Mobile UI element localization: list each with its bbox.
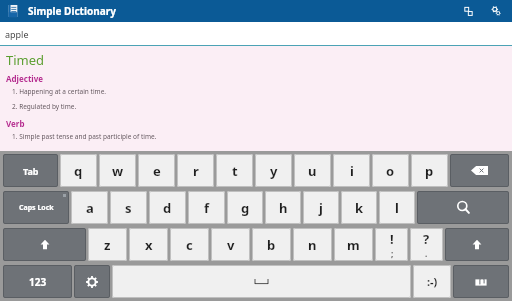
button[interactable]: r bbox=[177, 154, 214, 187]
button[interactable]: p bbox=[411, 154, 448, 187]
button[interactable]: k bbox=[341, 191, 377, 224]
button[interactable]: Space bbox=[112, 265, 411, 298]
button[interactable]: Hide keyboard bbox=[453, 265, 509, 298]
staticText: . bbox=[425, 248, 428, 259]
staticText: 123 bbox=[29, 275, 47, 289]
staticText: r bbox=[193, 162, 199, 180]
staticText: p bbox=[425, 162, 434, 180]
staticText: x bbox=[145, 236, 153, 254]
staticText: h bbox=[279, 199, 288, 217]
button[interactable]: :-) bbox=[413, 265, 451, 298]
staticText: q bbox=[74, 162, 83, 180]
button[interactable]: Simple Dictionary bbox=[4, 2, 22, 20]
staticText: j bbox=[319, 199, 323, 217]
button[interactable]: y bbox=[255, 154, 292, 187]
staticText: Caps Lock bbox=[19, 203, 54, 213]
button[interactable]: e bbox=[138, 154, 175, 187]
button[interactable]: f bbox=[188, 191, 225, 224]
staticText: b bbox=[267, 236, 276, 254]
staticText: v bbox=[227, 236, 235, 254]
staticText: Timed bbox=[6, 51, 45, 69]
staticText: 2. Regulated by time. bbox=[12, 102, 77, 111]
button[interactable]: Input settings bbox=[74, 265, 110, 298]
staticText: ? bbox=[423, 230, 430, 248]
button[interactable]: d bbox=[149, 191, 186, 224]
button[interactable]: Caps Lock bbox=[3, 191, 69, 224]
staticText: Adjective bbox=[6, 73, 44, 84]
button[interactable]: v bbox=[211, 228, 250, 261]
button[interactable]: Settings bbox=[486, 1, 506, 21]
staticText: ! bbox=[390, 230, 394, 248]
button[interactable]: o bbox=[372, 154, 409, 187]
staticText: u bbox=[308, 162, 317, 180]
staticText: :-) bbox=[427, 274, 438, 289]
staticText: g bbox=[241, 199, 250, 217]
staticText: w bbox=[112, 162, 124, 180]
staticText: Verb bbox=[6, 118, 25, 129]
button[interactable]: j bbox=[303, 191, 339, 224]
button[interactable]: x bbox=[129, 228, 168, 261]
staticText: a bbox=[86, 199, 94, 217]
button[interactable]: h bbox=[265, 191, 301, 224]
staticText: t bbox=[232, 162, 238, 180]
staticText: o bbox=[386, 162, 395, 180]
button[interactable]: u bbox=[294, 154, 331, 187]
button[interactable]: w bbox=[99, 154, 136, 187]
staticText: l bbox=[395, 199, 399, 217]
staticText: 1. Happening at a certain time. bbox=[12, 87, 107, 96]
staticText: z bbox=[104, 236, 111, 254]
button[interactable]: q bbox=[60, 154, 97, 187]
button[interactable]: i bbox=[333, 154, 370, 187]
button[interactable]: g bbox=[227, 191, 263, 224]
staticText: 1. Simple past tense and past participle… bbox=[12, 132, 157, 141]
button[interactable]: Backspace bbox=[450, 154, 509, 187]
staticText: Tab bbox=[23, 165, 39, 177]
staticText: f bbox=[204, 199, 210, 217]
button[interactable]: c bbox=[170, 228, 209, 261]
button[interactable]: m bbox=[334, 228, 373, 261]
staticText: s bbox=[125, 199, 132, 217]
button[interactable]: t bbox=[216, 154, 253, 187]
staticText: m bbox=[347, 236, 360, 254]
staticText: y bbox=[270, 162, 278, 180]
button[interactable]: Multi window bbox=[458, 1, 478, 21]
button[interactable]: Search bbox=[417, 191, 509, 224]
staticText: c bbox=[186, 236, 193, 254]
staticText: i bbox=[350, 162, 354, 180]
staticText: ; bbox=[391, 248, 394, 259]
button[interactable]: apple bbox=[0, 22, 512, 46]
button[interactable]: l bbox=[379, 191, 415, 224]
staticText: Simple Dictionary bbox=[28, 4, 116, 18]
staticText: apple bbox=[5, 28, 29, 40]
button[interactable]: 123 bbox=[3, 265, 72, 298]
staticText: n bbox=[308, 236, 317, 254]
button[interactable]: Shift bbox=[3, 228, 86, 261]
button[interactable]: n bbox=[293, 228, 332, 261]
button[interactable]: Tab bbox=[3, 154, 58, 187]
button[interactable]: Shift bbox=[445, 228, 509, 261]
button[interactable]: ! bbox=[375, 228, 408, 261]
button[interactable]: s bbox=[110, 191, 147, 224]
button[interactable]: a bbox=[71, 191, 108, 224]
staticText: e bbox=[153, 162, 161, 180]
button[interactable]: z bbox=[88, 228, 127, 261]
button[interactable]: b bbox=[252, 228, 291, 261]
staticText: d bbox=[163, 199, 172, 217]
button[interactable]: ? bbox=[410, 228, 443, 261]
staticText: k bbox=[355, 199, 364, 217]
